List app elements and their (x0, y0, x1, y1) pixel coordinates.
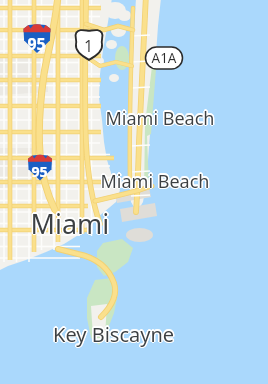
button[interactable]: Map of Miami and Miami Beach (0, 0, 268, 384)
